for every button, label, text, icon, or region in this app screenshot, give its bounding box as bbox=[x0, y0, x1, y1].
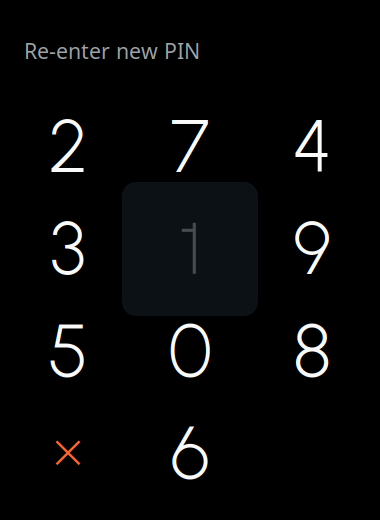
button[interactable]: 6 bbox=[129, 402, 251, 504]
staticText: 5 bbox=[48, 307, 88, 395]
button[interactable]: 2 bbox=[7, 95, 129, 197]
button[interactable]: 7 bbox=[129, 95, 251, 197]
staticText: 0 bbox=[168, 307, 211, 395]
staticText: 4 bbox=[292, 102, 331, 190]
button[interactable]: 4 bbox=[251, 95, 373, 197]
staticText: 9 bbox=[293, 204, 331, 292]
button[interactable]: 9 bbox=[251, 197, 373, 299]
button[interactable]: 8 bbox=[251, 300, 373, 402]
button[interactable]: 5 bbox=[7, 300, 129, 402]
button[interactable]: 1 bbox=[129, 197, 251, 299]
staticText: 3 bbox=[50, 204, 86, 292]
staticText: 7 bbox=[170, 102, 209, 190]
button[interactable]: 3 bbox=[7, 197, 129, 299]
staticText: Re-enter new PIN bbox=[24, 36, 200, 65]
staticText: 8 bbox=[293, 307, 331, 395]
button[interactable]: Delete bbox=[7, 402, 129, 504]
staticText: 2 bbox=[48, 102, 87, 190]
button[interactable]: 0 bbox=[129, 300, 251, 402]
staticText: 6 bbox=[170, 409, 209, 497]
